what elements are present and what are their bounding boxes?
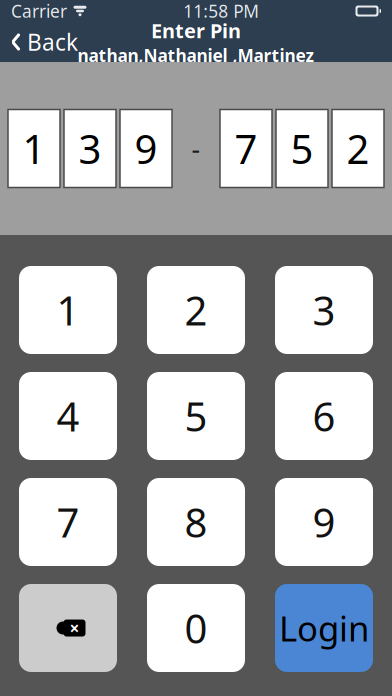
staticText: Carrier bbox=[11, 0, 67, 22]
staticText: 5 bbox=[290, 122, 313, 175]
staticText: 1 bbox=[22, 122, 45, 175]
button[interactable]: 1 bbox=[19, 266, 117, 354]
staticText: Enter Pin bbox=[151, 17, 241, 44]
staticText: 3 bbox=[312, 283, 335, 336]
button[interactable]: 3 bbox=[275, 266, 373, 354]
staticText: 6 bbox=[312, 389, 335, 442]
staticText: 5 bbox=[184, 389, 207, 442]
staticText: 4 bbox=[56, 389, 79, 442]
staticText: Back bbox=[27, 27, 78, 57]
button[interactable]: Login bbox=[275, 584, 373, 672]
button[interactable]: 9 bbox=[275, 478, 373, 566]
button[interactable]: Back bbox=[0, 22, 88, 62]
staticText: 0 bbox=[184, 601, 207, 654]
staticText: 3 bbox=[78, 122, 101, 175]
staticText: 8 bbox=[184, 495, 207, 548]
button[interactable]: 2 bbox=[147, 266, 245, 354]
button[interactable]: 6 bbox=[275, 372, 373, 460]
staticText: 9 bbox=[134, 122, 157, 175]
staticText: 1 bbox=[56, 283, 79, 336]
button[interactable]: 8 bbox=[147, 478, 245, 566]
staticText: 7 bbox=[56, 495, 79, 548]
staticText: 2 bbox=[184, 283, 207, 336]
staticText: 7 bbox=[234, 122, 257, 175]
button[interactable]: Delete bbox=[19, 584, 117, 672]
button[interactable]: 5 bbox=[147, 372, 245, 460]
staticText: × bbox=[69, 616, 79, 639]
button[interactable]: 0 bbox=[147, 584, 245, 672]
staticText: nathan,Nathaniel ,Martinez bbox=[77, 44, 314, 67]
staticText: - bbox=[191, 131, 200, 166]
staticText: 9 bbox=[312, 495, 335, 548]
button[interactable]: 7 bbox=[19, 478, 117, 566]
staticText: Login bbox=[279, 605, 369, 651]
staticText: 11:58 PM bbox=[183, 0, 259, 22]
staticText: 2 bbox=[346, 122, 369, 175]
button[interactable]: 4 bbox=[19, 372, 117, 460]
